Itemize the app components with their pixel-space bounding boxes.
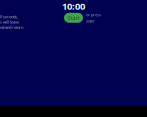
staticText: nd and return [0, 25, 23, 30]
staticText: enter [86, 18, 95, 24]
button[interactable]: Start [64, 13, 83, 23]
staticText: 0 seconds, [0, 14, 18, 19]
staticText: 10:00 [62, 0, 85, 12]
staticText: s will leave [0, 19, 19, 25]
staticText: Start [67, 14, 79, 21]
staticText: or press [86, 12, 101, 17]
